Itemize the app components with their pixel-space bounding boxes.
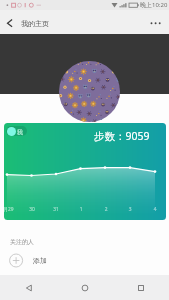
button[interactable]: Profile avatar — [59, 61, 120, 122]
staticText: 4 — [142, 206, 166, 213]
button[interactable]: Home — [57, 275, 113, 300]
button[interactable]: 添加 — [0, 248, 169, 273]
staticText: 添加 — [33, 256, 47, 265]
staticText: 3 — [117, 206, 143, 213]
button[interactable]: 我 — [4, 123, 166, 220]
button[interactable]: Back — [0, 275, 57, 300]
staticText: 31 — [43, 206, 69, 213]
button[interactable]: More options — [145, 10, 169, 34]
staticText: 我 — [17, 128, 23, 135]
button[interactable]: Recent apps — [113, 275, 169, 300]
staticText: 晚上10:20 — [140, 1, 168, 9]
staticText: 2 — [93, 206, 119, 213]
staticText: 关注的人 — [10, 238, 34, 246]
staticText: 我的主页 — [21, 19, 49, 28]
button[interactable]: Back — [0, 10, 24, 34]
staticText: 3月29 — [4, 206, 20, 213]
staticText: 30 — [19, 206, 45, 213]
staticText: 1 — [68, 206, 94, 213]
staticText: 步数：9059 — [94, 129, 150, 143]
